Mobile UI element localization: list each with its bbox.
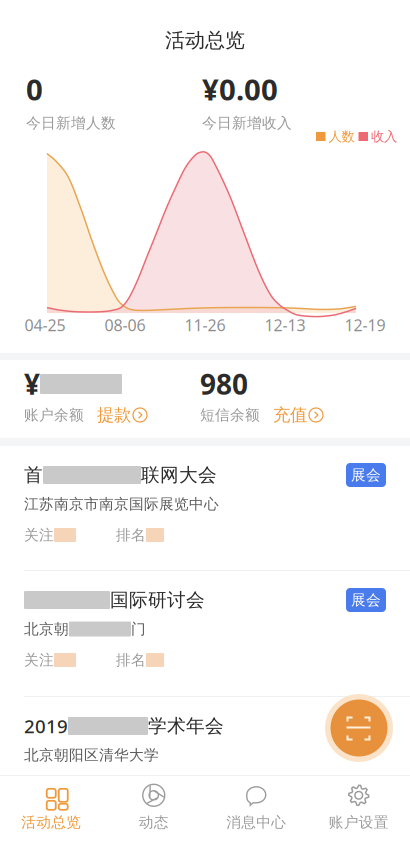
staticText: 展会 (351, 591, 381, 609)
staticText: ¥ (24, 365, 40, 403)
staticText: 江苏南京市南京国际展览中心 (24, 495, 219, 513)
button[interactable]: 账户设置 (307, 775, 410, 846)
staticText: 北京朝 (24, 620, 69, 638)
button[interactable]: 动态 (102, 775, 205, 846)
staticText: 门 (131, 620, 146, 638)
staticText: 关注 (24, 526, 54, 544)
staticText: 活动总览 (21, 813, 81, 831)
staticText: 2019 (24, 714, 68, 738)
staticText: 北京朝阳区清华大学 (24, 746, 159, 764)
staticText: 短信余额 (200, 406, 260, 424)
staticText: 04-25 (24, 314, 65, 336)
staticText: 人数 (328, 128, 354, 145)
staticText: 关注 (24, 651, 54, 669)
staticText: 980 (200, 365, 248, 403)
button[interactable]: 消息中心 (205, 775, 307, 846)
staticText: 消息中心 (226, 813, 286, 831)
staticText: 11-26 (184, 314, 225, 336)
staticText: 国际研讨会 (110, 588, 205, 611)
staticText: 学术年会 (148, 714, 224, 737)
button[interactable]: 扫一扫 (325, 694, 393, 762)
staticText: 活动总览 (165, 28, 245, 53)
staticText: 今日新增收入 (202, 114, 292, 132)
staticText: 动态 (139, 813, 169, 831)
staticText: ¥0.00 (202, 69, 278, 108)
staticText: 12-13 (264, 314, 305, 336)
staticText: 展会 (351, 466, 381, 484)
button[interactable]: 活动总览 (0, 775, 102, 846)
button[interactable]: 国际研讨会 (0, 571, 410, 696)
button[interactable]: 提款 (97, 404, 147, 426)
staticText: 排名 (116, 526, 146, 544)
button[interactable]: 充值 (273, 404, 323, 426)
staticText: 账户余额 (24, 406, 84, 424)
staticText: 0 (26, 69, 43, 108)
staticText: 充值 (273, 404, 307, 426)
staticText: 排名 (116, 651, 146, 669)
button[interactable]: 2019 (0, 697, 410, 775)
staticText: 12-19 (344, 314, 385, 336)
staticText: 收入 (371, 128, 397, 145)
staticText: 08-06 (104, 314, 145, 336)
staticText: 提款 (97, 404, 131, 426)
staticText: 账户设置 (329, 813, 389, 831)
staticText: 联网大会 (141, 463, 217, 486)
button[interactable]: 首 (0, 446, 410, 570)
staticText: 首 (24, 463, 43, 486)
staticText: 今日新增人数 (26, 114, 116, 132)
